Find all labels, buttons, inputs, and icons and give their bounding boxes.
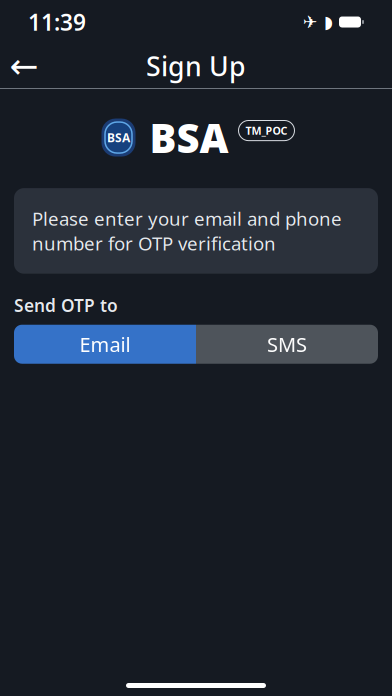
staticText: Email: [79, 331, 130, 357]
button[interactable]: Email: [14, 325, 196, 364]
staticText: TM_POC: [245, 123, 287, 138]
staticText: ←: [9, 46, 38, 86]
staticText: Send OTP to: [14, 294, 118, 317]
staticText: SMS: [267, 331, 307, 357]
staticText: Sign Up: [146, 48, 246, 84]
staticText: ◗: [324, 12, 333, 32]
staticText: Please enter your email and phone number…: [32, 206, 342, 256]
staticText: BSA: [149, 111, 228, 164]
button[interactable]: Back: [0, 44, 48, 88]
staticText: BSA: [107, 130, 130, 145]
staticText: 11:39: [28, 7, 86, 37]
button[interactable]: SMS: [196, 325, 378, 364]
staticText: ✈: [303, 12, 318, 32]
